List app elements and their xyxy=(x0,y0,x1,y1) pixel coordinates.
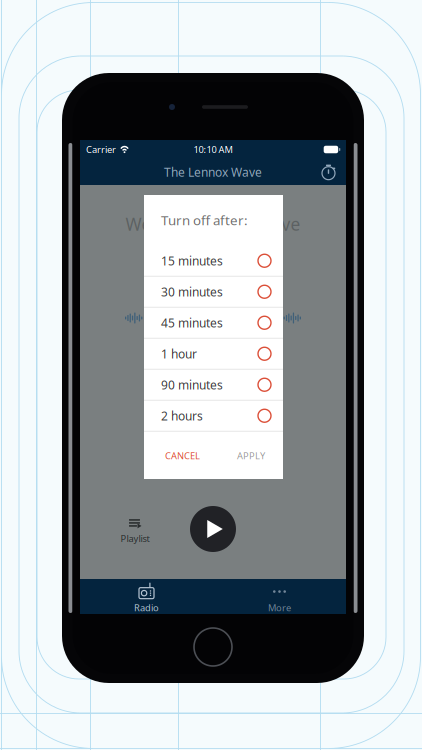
staticText: 30 minutes xyxy=(161,284,223,300)
staticText: Turn off after: xyxy=(161,211,248,229)
staticText: APPLY xyxy=(237,450,265,462)
staticText: Randy C. e-Rio De xyxy=(161,448,265,464)
button[interactable]: Sleep timer xyxy=(317,160,340,183)
button[interactable]: 90 minutes xyxy=(144,370,283,401)
button[interactable]: 30 minutes xyxy=(144,277,283,308)
button[interactable]: Radio xyxy=(80,579,213,614)
staticText: this is the wave xyxy=(150,371,276,394)
staticText: More xyxy=(268,602,291,614)
staticText: Welcome to the wave xyxy=(125,212,300,235)
staticText: Carrier xyxy=(86,143,116,156)
button[interactable]: APPLY xyxy=(232,442,270,470)
button[interactable]: More xyxy=(213,579,346,614)
staticText: 90 minutes xyxy=(161,377,223,393)
staticText: 15 minutes xyxy=(161,253,223,269)
staticText: Playlist xyxy=(120,532,149,545)
button[interactable]: Playlist xyxy=(108,515,162,547)
staticText: CANCEL xyxy=(165,450,200,462)
button[interactable]: Play xyxy=(190,506,236,552)
staticText: 2 hours xyxy=(161,408,203,424)
staticText: Radio xyxy=(134,602,159,614)
staticText: 1 hour xyxy=(161,346,197,362)
staticText: The Lennox Wave xyxy=(164,164,262,180)
button[interactable]: 2 hours xyxy=(144,401,283,432)
button[interactable]: 45 minutes xyxy=(144,308,283,339)
button[interactable]: 1 hour xyxy=(144,339,283,370)
button[interactable]: 15 minutes xyxy=(144,246,283,277)
staticText: 10:10 AM xyxy=(193,143,232,156)
button[interactable]: CANCEL xyxy=(160,442,205,470)
staticText: 45 minutes xyxy=(161,315,223,331)
